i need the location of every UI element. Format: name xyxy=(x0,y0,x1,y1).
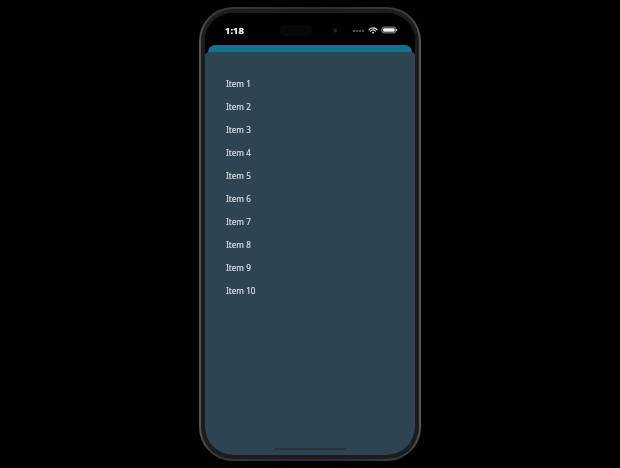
button[interactable]: Item 10 xyxy=(205,279,415,302)
staticText: Item 3 xyxy=(226,124,251,135)
staticText: Item 6 xyxy=(226,193,251,204)
button[interactable]: Item 7 xyxy=(205,210,415,233)
staticText: Item 1 xyxy=(226,78,251,89)
staticText: Item 9 xyxy=(226,262,251,273)
staticText: Item 8 xyxy=(226,239,251,250)
button[interactable]: Item 9 xyxy=(205,256,415,279)
staticText: Item 7 xyxy=(226,216,251,227)
staticText: Item 2 xyxy=(226,101,251,112)
staticText: Item 5 xyxy=(226,170,251,181)
button[interactable]: Item 2 xyxy=(205,95,415,118)
staticText: Item 10 xyxy=(226,285,256,296)
staticText: Item 4 xyxy=(226,147,251,158)
button[interactable]: Item 8 xyxy=(205,233,415,256)
button[interactable]: Item 3 xyxy=(205,118,415,141)
button[interactable]: Item 4 xyxy=(205,141,415,164)
button[interactable]: Item 6 xyxy=(205,187,415,210)
other: Battery xyxy=(382,26,398,34)
button[interactable]: Top app bar xyxy=(208,45,412,54)
other: Cellular signal xyxy=(353,26,364,34)
button[interactable]: Item 5 xyxy=(205,164,415,187)
button[interactable]: Item 1 xyxy=(205,72,415,95)
other: Wi-Fi xyxy=(368,26,378,34)
staticText: 1:18 xyxy=(225,24,244,37)
